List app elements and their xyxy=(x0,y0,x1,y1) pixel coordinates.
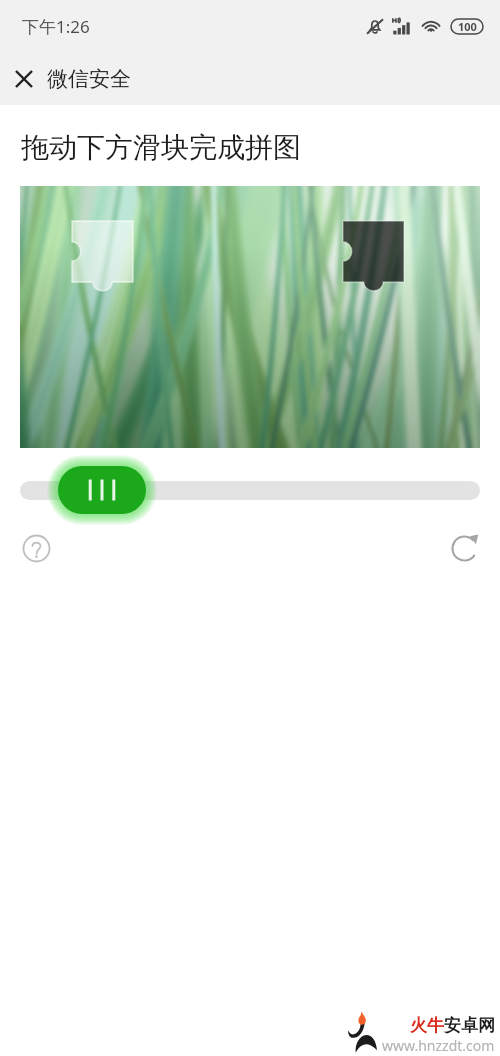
staticText: 下午1:26 xyxy=(22,15,90,38)
button[interactable]: Close xyxy=(0,55,47,103)
button[interactable]: Help xyxy=(14,526,58,570)
staticText: www.hnzzdt.com xyxy=(382,1036,495,1055)
button[interactable]: Refresh xyxy=(442,526,486,570)
button[interactable]: Slide to complete puzzle xyxy=(58,466,146,514)
staticText: 拖动下方滑块完成拼图 xyxy=(21,130,301,165)
staticText: 安卓网 xyxy=(444,1015,495,1036)
staticText: 微信安全 xyxy=(47,66,131,92)
staticText: 100 xyxy=(458,19,477,34)
staticText: 火牛 xyxy=(410,1015,444,1036)
